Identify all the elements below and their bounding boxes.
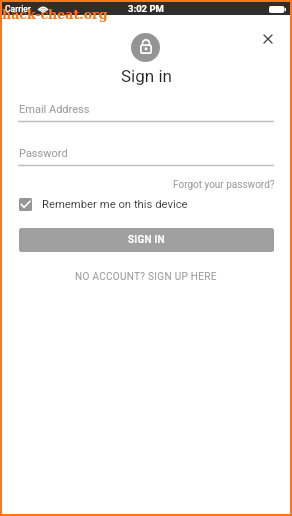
staticText: Email Address <box>19 103 90 116</box>
button[interactable]: NO ACCOUNT? SIGN UP HERE <box>75 271 217 283</box>
staticText: Carrier <box>5 4 31 14</box>
button[interactable]: Close <box>254 25 281 52</box>
staticText: Remember me on this device <box>42 198 188 211</box>
button[interactable]: SIGN IN <box>19 228 274 252</box>
staticText: Sign in <box>121 66 172 86</box>
staticText: SIGN IN <box>128 234 165 246</box>
staticText: Password <box>19 147 68 160</box>
staticText: hack-cheat.org <box>2 7 108 22</box>
staticText: Forgot your password? <box>173 179 275 191</box>
staticText: 3:02 PM <box>128 3 164 14</box>
staticText: NO ACCOUNT? SIGN UP HERE <box>75 271 217 283</box>
button[interactable]: Forgot your password? <box>173 179 275 191</box>
button[interactable]: Remember me on this device <box>19 198 188 211</box>
